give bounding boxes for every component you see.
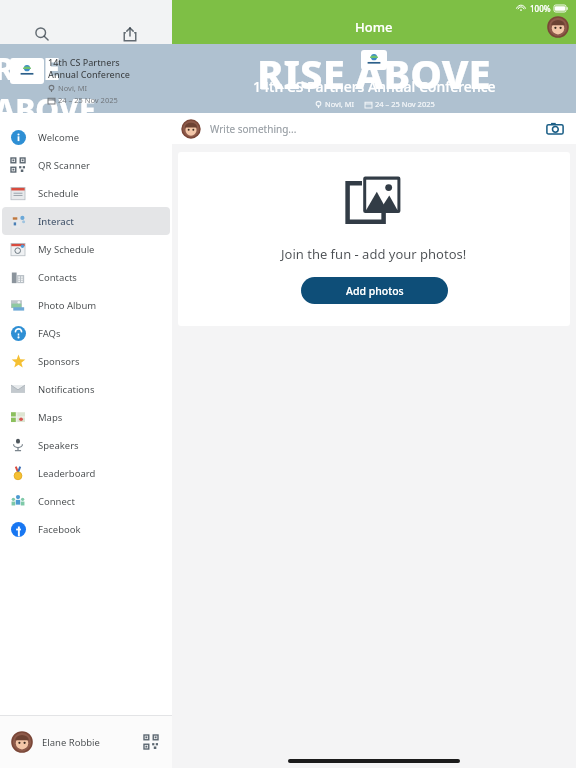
button[interactable]: Photo Album	[2, 291, 170, 319]
staticText: QR Scanner	[38, 159, 90, 172]
staticText: Write something...	[210, 122, 297, 136]
staticText: Add photos	[346, 284, 404, 298]
button[interactable]: Speakers	[2, 431, 170, 459]
staticText: 24 – 25 Nov 2025	[58, 95, 118, 105]
staticText: 14th CS Partners Annual Conference	[253, 77, 496, 96]
staticText: Photo Album	[38, 299, 97, 312]
staticText: RISE ABOVE	[0, 48, 166, 130]
staticText: RISE ABOVE	[257, 46, 491, 100]
button[interactable]: My Schedule	[2, 235, 170, 263]
button[interactable]: My QR code	[142, 733, 160, 751]
button[interactable]: FAQs	[2, 319, 170, 347]
staticText: Connect	[38, 495, 75, 508]
button[interactable]: Facebook	[2, 515, 170, 543]
button[interactable]: Schedule	[2, 179, 170, 207]
staticText: Home	[355, 18, 393, 36]
button[interactable]: Search	[30, 22, 54, 46]
staticText: 100%	[530, 3, 551, 14]
staticText: Leaderboard	[38, 467, 96, 480]
staticText: Novi, MI	[325, 99, 355, 109]
button[interactable]: Notifications	[2, 375, 170, 403]
button[interactable]: Contacts	[2, 263, 170, 291]
staticText: 14th CS Partners Annual Conference	[48, 56, 130, 80]
staticText: My Schedule	[38, 243, 95, 256]
button[interactable]: Interact	[2, 207, 170, 235]
staticText: Notifications	[38, 383, 95, 396]
button[interactable]: Maps	[2, 403, 170, 431]
button[interactable]: Sponsors	[2, 347, 170, 375]
button[interactable]: Profile	[548, 17, 568, 37]
staticText: Interact	[38, 215, 74, 228]
button[interactable]: Add photo	[544, 118, 566, 140]
staticText: Schedule	[38, 187, 79, 200]
staticText: Join the fun - add your photos!	[281, 245, 467, 263]
staticText: Facebook	[38, 523, 81, 536]
button[interactable]: Connect	[2, 487, 170, 515]
button[interactable]: QR Scanner	[2, 151, 170, 179]
staticText: FAQs	[38, 327, 61, 340]
button[interactable]: Leaderboard	[2, 459, 170, 487]
staticText: Contacts	[38, 271, 77, 284]
staticText: Welcome	[38, 131, 80, 144]
staticText: Maps	[38, 411, 63, 424]
staticText: 24 – 25 Nov 2025	[375, 99, 435, 109]
staticText: Sponsors	[38, 355, 80, 368]
button[interactable]: Share	[118, 22, 142, 46]
staticText: Novi, MI	[58, 83, 88, 93]
button[interactable]: Add photos	[301, 277, 448, 304]
staticText: Elane Robbie	[42, 736, 100, 749]
button[interactable]: Elane Robbie	[0, 716, 172, 768]
button[interactable]: Write something...	[172, 113, 576, 144]
button[interactable]: Welcome	[2, 123, 170, 151]
staticText: Speakers	[38, 439, 79, 452]
